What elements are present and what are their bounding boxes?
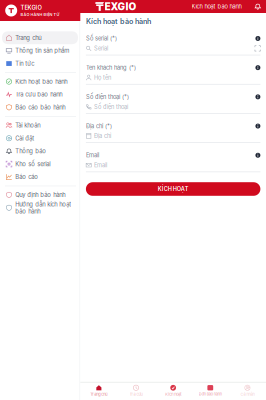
staticText: Tên khách hàng (*) — [86, 64, 136, 71]
staticText: Kích hoạt bảo hành — [86, 17, 151, 26]
staticText: Cài đặt — [15, 135, 34, 142]
staticText: Hướng dẫn kích hoạt bảo hành — [15, 201, 71, 215]
button[interactable]: Cài đặt — [2, 132, 78, 145]
button[interactable]: Tin tức — [2, 57, 78, 70]
button[interactable]: Thông tin sản phẩm — [2, 44, 78, 57]
button[interactable]: KÍCH HOẠT — [86, 182, 260, 196]
button[interactable]: Báo cáo — [2, 170, 78, 183]
staticText: Kho số serial — [15, 160, 50, 168]
staticText: Báo cáo bảo hành — [15, 104, 65, 111]
button[interactable]: Trang chủ — [2, 31, 78, 44]
staticText: Cá nhân — [240, 392, 254, 397]
staticText: Email — [86, 152, 99, 159]
button[interactable]: Báo cáo bảo hành — [2, 101, 78, 114]
staticText: Trang chủ — [90, 392, 107, 397]
staticText: Thông tin sản phẩm — [15, 47, 69, 54]
staticText: Tra cứu bảo hành — [15, 91, 62, 98]
button[interactable]: Thông báo — [2, 145, 78, 158]
button[interactable]: Thông báo — [242, 3, 266, 10]
staticText: Số serial (*) — [86, 35, 117, 42]
button[interactable]: Hướng dẫn kích hoạt bảo hành — [2, 201, 78, 214]
staticText: Trang chủ — [15, 34, 41, 41]
button[interactable]: Tài khoản — [2, 119, 78, 132]
staticText: Báo cáo — [15, 173, 38, 180]
staticText: Thông báo — [15, 148, 46, 155]
staticText: Kích hoạt bảo hành — [15, 78, 67, 85]
staticText: Tra cứu — [129, 392, 142, 397]
staticText: Tài khoản — [15, 122, 40, 129]
button[interactable]: Tra cứu bảo hành — [2, 88, 78, 101]
staticText: Địa chỉ (*) — [86, 123, 112, 129]
staticText: TEKGIO — [21, 4, 42, 11]
staticText: Địa chỉ — [94, 132, 111, 139]
button[interactable]: Kích hoạt bảo hành — [2, 75, 78, 88]
staticText: BẢO HÀNH ĐIỆN TỬ — [21, 12, 60, 17]
button[interactable]: Tra cứu — [117, 385, 154, 397]
staticText: Tin tức — [15, 60, 34, 67]
button[interactable]: Trang chủ — [80, 385, 117, 397]
staticText: Serial — [94, 45, 108, 52]
button[interactable]: Kích hoạt — [155, 385, 192, 397]
staticText: KÍCH HOẠT — [158, 186, 189, 192]
staticText: Kích hoạt — [165, 392, 181, 397]
staticText: Quy định bảo hành — [15, 191, 65, 198]
staticText: Đơn bảo hành — [199, 392, 222, 396]
button[interactable]: Kho số serial — [2, 158, 78, 170]
staticText: Họ tên — [94, 74, 111, 81]
staticText: Email — [94, 162, 107, 169]
staticText: Số điện thoại (*) — [86, 93, 129, 100]
button[interactable]: Đơn bảo hành — [192, 385, 229, 397]
staticText: EXGIO — [104, 0, 136, 13]
button[interactable]: Quy định bảo hành — [2, 188, 78, 201]
staticText: Kích hoạt bảo hành — [192, 3, 242, 10]
button[interactable]: Cá nhân — [229, 385, 266, 397]
staticText: Số điện thoại — [94, 103, 128, 110]
